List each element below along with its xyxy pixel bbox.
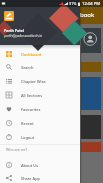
button[interactable]: About Us	[0, 158, 80, 172]
staticText: book	[80, 11, 95, 19]
button[interactable]: Favourites	[0, 102, 80, 116]
staticText: Recent	[21, 121, 34, 126]
staticText: Search	[21, 65, 34, 70]
button[interactable]: Search	[0, 60, 80, 74]
button[interactable]: Share App	[0, 171, 80, 183]
staticText: Favourites	[21, 107, 41, 112]
button[interactable]: All Sections	[0, 88, 80, 102]
staticText: Logout	[21, 135, 35, 140]
button[interactable]: Parth Patel	[0, 0, 80, 45]
staticText: Who are we?	[6, 147, 27, 152]
button[interactable]: Dashboard	[0, 47, 80, 61]
staticText: Chapter Wise	[21, 79, 46, 84]
staticText: All Sections	[21, 93, 43, 98]
staticText: Parth Patel	[4, 28, 24, 33]
button[interactable]: Logout	[0, 130, 80, 144]
staticText: 91%	[69, 1, 77, 6]
staticText: Dashboard	[21, 52, 42, 57]
staticText: Share App	[21, 176, 40, 181]
staticText: 12:04 PM	[82, 1, 101, 7]
button[interactable]: Recent	[0, 116, 80, 130]
button[interactable]: Chapter Wise	[0, 74, 80, 88]
staticText: About Us	[21, 163, 39, 168]
staticText: parth@padmavatitech.in	[4, 33, 43, 37]
